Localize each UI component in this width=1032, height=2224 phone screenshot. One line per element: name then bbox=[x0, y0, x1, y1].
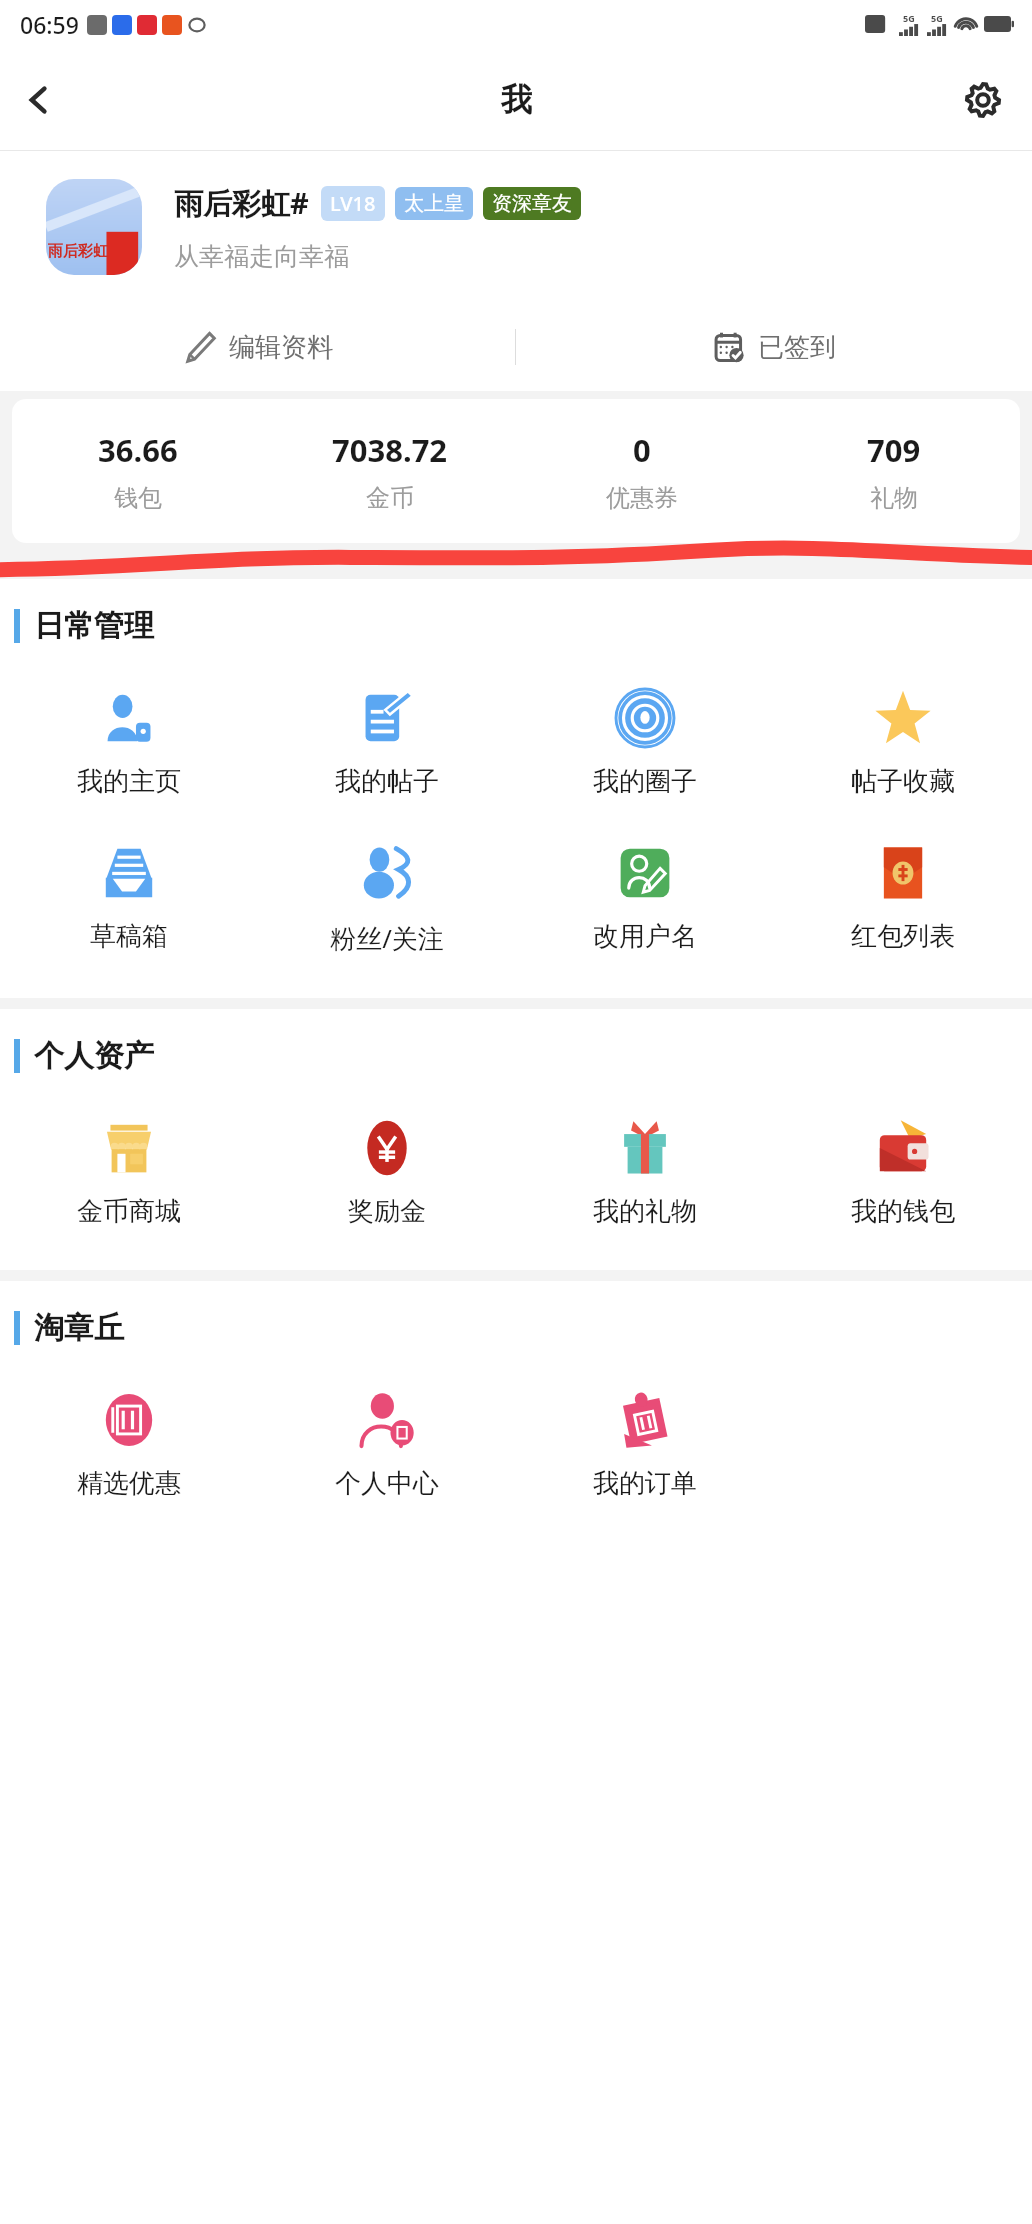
staticText: 优惠券 bbox=[606, 483, 678, 513]
staticText: 金币商城 bbox=[77, 1195, 181, 1228]
button[interactable]: 我的订单 bbox=[516, 1387, 774, 1504]
staticText: 0 bbox=[633, 429, 651, 471]
staticText: 精选优惠 bbox=[77, 1467, 181, 1500]
staticText: 雨后彩虹 bbox=[48, 242, 108, 261]
staticText: 帖子收藏 bbox=[851, 765, 955, 798]
staticText: 雨后彩虹# bbox=[174, 183, 309, 223]
staticText: 编辑资料 bbox=[229, 331, 333, 364]
staticText: 草稿箱 bbox=[90, 920, 168, 953]
staticText: 日常管理 bbox=[34, 607, 154, 645]
staticText: 06:59 bbox=[20, 9, 79, 40]
staticText: 从幸福走向幸福 bbox=[174, 241, 349, 272]
staticText: LV18 bbox=[330, 190, 376, 217]
staticText: 我的圈子 bbox=[593, 765, 697, 798]
staticText: 我的主页 bbox=[77, 765, 181, 798]
staticText: 个人资产 bbox=[34, 1037, 154, 1075]
button[interactable]: 草稿箱 bbox=[0, 840, 258, 957]
staticText: 7038.72 bbox=[332, 429, 448, 471]
staticText: 709 bbox=[867, 429, 921, 471]
staticText: 红包列表 bbox=[851, 920, 955, 953]
button[interactable]: 我的帖子 bbox=[258, 685, 516, 802]
staticText: 奖励金 bbox=[348, 1195, 426, 1228]
button[interactable]: 7038.72 bbox=[264, 425, 516, 517]
staticText: 我的钱包 bbox=[851, 1195, 955, 1228]
button[interactable]: 我的礼物 bbox=[516, 1115, 774, 1232]
button[interactable]: 红包列表 bbox=[774, 840, 1032, 957]
button[interactable]: 精选优惠 bbox=[0, 1387, 258, 1504]
staticText: 5G bbox=[931, 12, 943, 24]
button[interactable]: 709 bbox=[768, 425, 1020, 517]
staticText: 淘章丘 bbox=[34, 1309, 124, 1347]
button[interactable]: Avatar bbox=[46, 179, 142, 275]
staticText: 5G bbox=[903, 12, 915, 24]
button[interactable]: 编辑资料 bbox=[0, 309, 515, 385]
button[interactable]: Settings bbox=[952, 69, 1014, 131]
button[interactable]: 36.66 bbox=[12, 425, 264, 517]
staticText: 36.66 bbox=[98, 429, 178, 471]
staticText: 我的帖子 bbox=[335, 765, 439, 798]
staticText: 粉丝/关注 bbox=[330, 920, 444, 956]
button[interactable]: 个人中心 bbox=[258, 1387, 516, 1504]
button[interactable]: 已签到 bbox=[516, 309, 1032, 385]
staticText: 已签到 bbox=[758, 331, 836, 364]
button[interactable]: 帖子收藏 bbox=[774, 685, 1032, 802]
staticText: 礼物 bbox=[870, 483, 918, 513]
staticText: 金币 bbox=[366, 483, 414, 513]
button[interactable]: 我的钱包 bbox=[774, 1115, 1032, 1232]
button[interactable]: 改用户名 bbox=[516, 840, 774, 957]
button[interactable]: 粉丝/关注 bbox=[258, 840, 516, 960]
button[interactable]: Back bbox=[8, 69, 70, 131]
button[interactable]: 0 bbox=[516, 425, 768, 517]
staticText: 我 bbox=[501, 80, 532, 119]
staticText: 资深章友 bbox=[492, 191, 572, 216]
staticText: 钱包 bbox=[114, 483, 162, 513]
staticText: 我的礼物 bbox=[593, 1195, 697, 1228]
staticText: 改用户名 bbox=[593, 920, 697, 953]
button[interactable]: 奖励金 bbox=[258, 1115, 516, 1232]
button[interactable]: 我的圈子 bbox=[516, 685, 774, 802]
button[interactable]: 我的主页 bbox=[0, 685, 258, 802]
staticText: 个人中心 bbox=[335, 1467, 439, 1500]
staticText: 太上皇 bbox=[404, 191, 464, 216]
button[interactable]: 金币商城 bbox=[0, 1115, 258, 1232]
staticText: 我的订单 bbox=[593, 1467, 697, 1500]
